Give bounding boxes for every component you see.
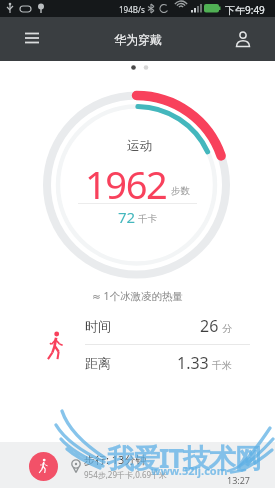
button[interactable]: 步行: 13分钟 — [0, 442, 275, 488]
button[interactable] — [228, 25, 258, 53]
staticText: 步数 — [171, 185, 190, 197]
button[interactable] — [29, 452, 58, 481]
staticText: 步行: 13分钟 — [84, 452, 147, 467]
staticText: 26 — [200, 315, 219, 337]
staticText: 时间 — [85, 318, 111, 334]
staticText: 1962 — [85, 158, 167, 204]
staticText: 千卡 — [138, 213, 157, 225]
staticText: 72 — [118, 207, 136, 227]
staticText: 距离 — [85, 355, 111, 371]
staticText: 下午9:49 — [225, 3, 265, 17]
staticText: 954步,29千卡,0.69千米 — [84, 469, 168, 480]
staticText: ≈ 1个冰激凌的热量 — [92, 289, 184, 303]
button[interactable] — [14, 28, 50, 50]
button[interactable]: 时间 — [85, 308, 232, 344]
staticText: 13:27 — [227, 474, 251, 486]
button[interactable]: 距离 — [85, 345, 232, 381]
staticText: 1.33 — [177, 352, 209, 374]
staticText: 千米 — [212, 359, 232, 372]
staticText: 我爱IT技术网 — [107, 439, 262, 476]
staticText: www.52ij.com — [151, 463, 228, 478]
staticText: 运动 — [127, 138, 152, 154]
staticText: 华为穿戴 — [114, 32, 162, 47]
staticText: 分 — [222, 322, 232, 335]
staticText: 194B/s — [119, 4, 145, 15]
